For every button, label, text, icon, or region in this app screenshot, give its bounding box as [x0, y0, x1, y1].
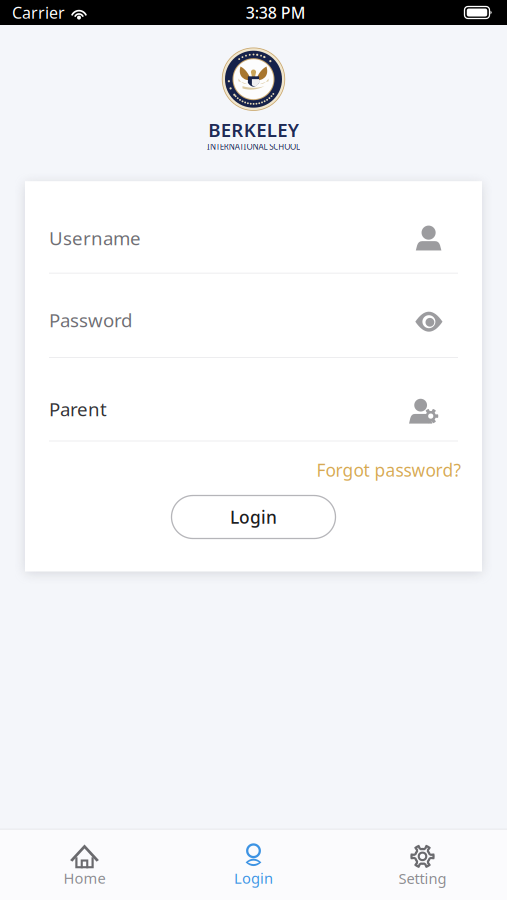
staticText: BERKELEY: [208, 117, 299, 142]
button[interactable]: Forgot password?: [316, 453, 461, 486]
staticText: Forgot password?: [316, 458, 461, 481]
staticText: INTERNATIONAL SCHOOL: [207, 141, 300, 152]
staticText: Parent: [49, 396, 107, 421]
staticText: Carrier: [12, 2, 65, 23]
staticText: Password: [49, 308, 132, 332]
staticText: 3:38 PM: [246, 2, 306, 23]
button[interactable]: Home: [0, 844, 169, 888]
button[interactable]: Login: [169, 844, 338, 888]
button[interactable]: Login: [171, 495, 335, 538]
button[interactable]: Setting: [338, 844, 507, 888]
staticText: Setting: [398, 868, 446, 888]
staticText: Home: [63, 868, 105, 888]
staticText: Login: [234, 868, 273, 888]
staticText: Login: [230, 505, 277, 528]
staticText: Username: [49, 226, 141, 250]
